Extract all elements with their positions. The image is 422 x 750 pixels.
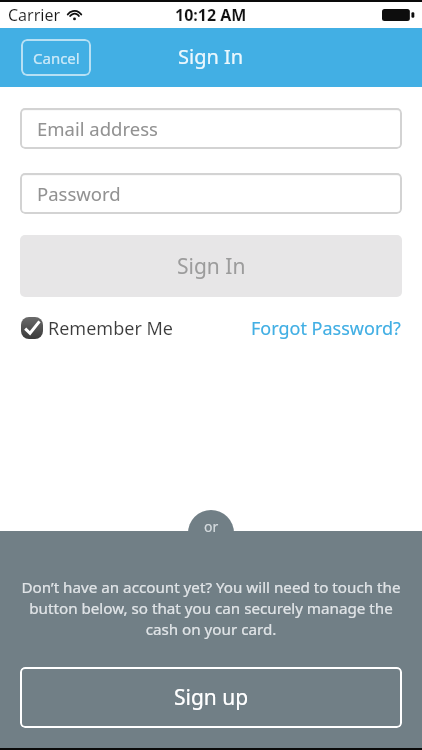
- staticText: Carrier: [8, 4, 61, 26]
- staticText: Sign In: [178, 43, 244, 70]
- button[interactable]: Cancel: [21, 39, 91, 76]
- button[interactable]: Password: [20, 173, 402, 214]
- staticText: Sign In: [177, 252, 246, 281]
- other: Battery full: [382, 9, 414, 21]
- staticText: 10:12 AM: [175, 4, 247, 26]
- staticText: Email address: [37, 116, 158, 141]
- staticText: Sign up: [174, 683, 249, 712]
- staticText: Remember Me: [48, 316, 173, 340]
- button[interactable]: Sign up: [20, 667, 402, 728]
- staticText: Forgot Password?: [251, 316, 401, 340]
- staticText: or: [204, 517, 219, 536]
- staticText: Cancel: [33, 48, 80, 68]
- button[interactable]: Forgot Password?: [251, 316, 401, 340]
- button[interactable]: Sign In: [20, 235, 402, 297]
- button[interactable]: Remember Me: [21, 316, 173, 340]
- staticText: Password: [37, 181, 121, 206]
- staticText: Don’t have an account yet? You will need…: [12, 577, 410, 640]
- button[interactable]: Email address: [20, 108, 402, 149]
